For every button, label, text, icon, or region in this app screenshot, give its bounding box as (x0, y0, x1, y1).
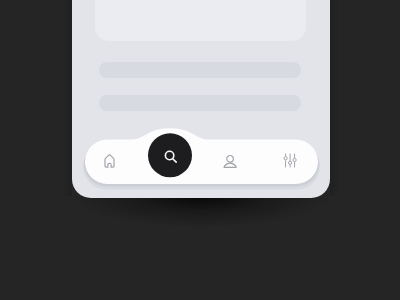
button[interactable] (208, 140, 252, 184)
button[interactable] (268, 140, 312, 184)
button[interactable] (148, 133, 192, 177)
button[interactable] (88, 140, 132, 184)
